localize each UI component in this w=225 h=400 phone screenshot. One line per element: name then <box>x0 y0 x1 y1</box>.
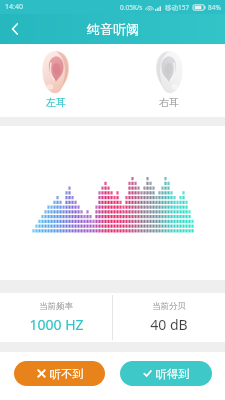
button[interactable]: 听得到 <box>120 361 212 386</box>
staticText: 40 dB <box>150 315 188 334</box>
staticText: 0.05K/s <box>120 3 143 12</box>
staticText: 1000 HZ <box>29 315 84 334</box>
button[interactable]: Back <box>0 14 30 44</box>
button[interactable]: 当前分贝 <box>113 293 225 342</box>
button[interactable]: 右耳 <box>112 44 225 117</box>
staticText: 左耳 <box>46 96 66 109</box>
staticText: 右耳 <box>159 96 179 109</box>
button[interactable]: 当前频率 <box>0 293 112 342</box>
staticText: 听不到 <box>50 367 83 381</box>
staticText: 纯音听阈 <box>87 21 139 37</box>
staticText: 听得到 <box>156 367 189 381</box>
staticText: 当前分贝 <box>152 301 186 312</box>
staticText: 移动157 <box>165 3 190 12</box>
staticText: 当前频率 <box>39 301 73 312</box>
button[interactable]: 听不到 <box>14 361 105 386</box>
staticText: 84% <box>208 3 221 12</box>
staticText: 14:40 <box>5 2 23 12</box>
button[interactable]: 左耳 <box>0 44 112 117</box>
